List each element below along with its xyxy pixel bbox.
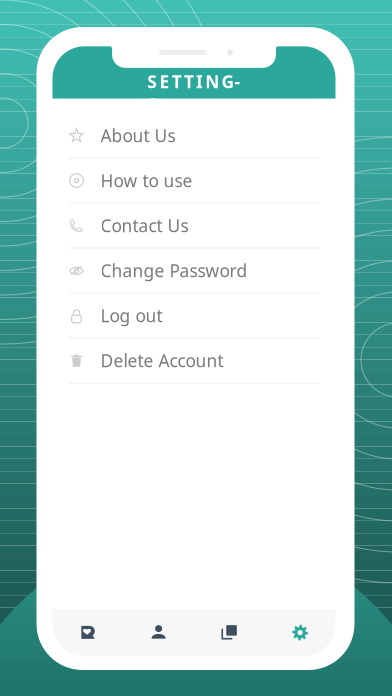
button[interactable]: Change Password <box>68 248 319 293</box>
staticText: Delete Account <box>100 349 223 372</box>
button[interactable]: Log out <box>68 293 319 338</box>
button[interactable]: Settings <box>265 609 336 656</box>
staticText: About Us <box>100 124 175 147</box>
button[interactable]: Profile <box>123 609 194 656</box>
button[interactable]: Contact Us <box>68 203 319 248</box>
button[interactable]: About Us <box>68 113 319 158</box>
button[interactable]: How to use <box>68 158 319 203</box>
staticText: How to use <box>100 169 192 192</box>
staticText: Contact Us <box>100 214 188 237</box>
button[interactable]: Library <box>194 609 265 656</box>
button[interactable]: Saved <box>52 609 123 656</box>
staticText: Change Password <box>100 259 247 282</box>
staticText: Log out <box>100 304 162 327</box>
button[interactable]: Delete Account <box>68 338 319 383</box>
staticText: SETTINGS <box>147 70 247 93</box>
